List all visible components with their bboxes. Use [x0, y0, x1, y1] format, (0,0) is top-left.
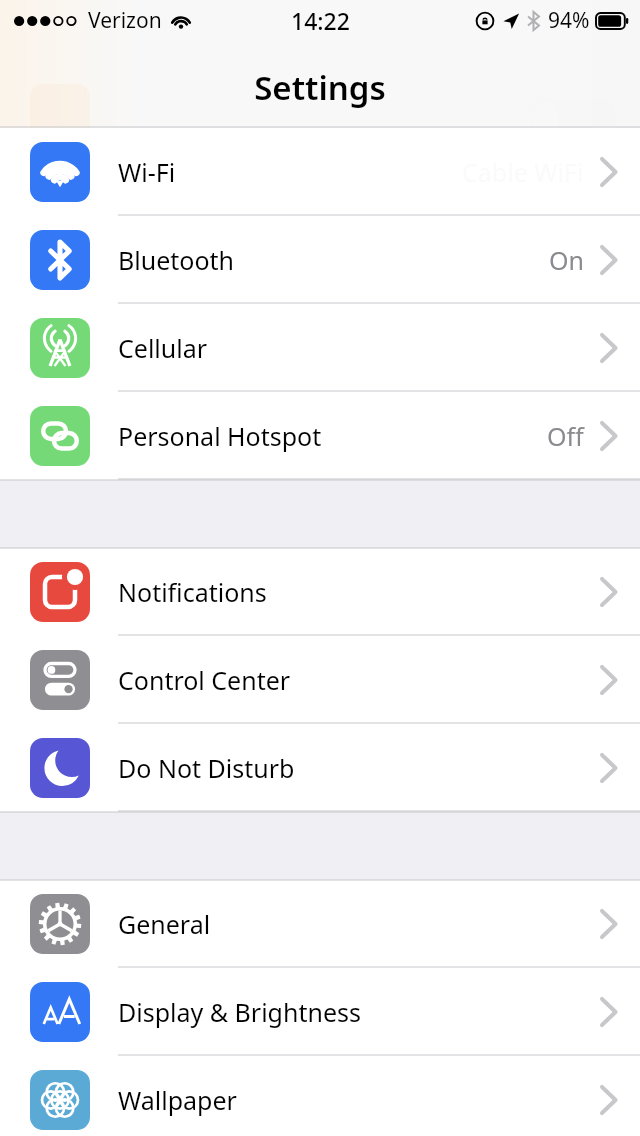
button[interactable]: General	[0, 880, 640, 968]
button[interactable]: Personal Hotspot	[0, 392, 640, 480]
staticText: Do Not Disturb	[118, 751, 295, 785]
button[interactable]: Bluetooth	[0, 216, 640, 304]
staticText: Notifications	[118, 575, 267, 609]
staticText: General	[118, 907, 211, 941]
staticText: Off	[547, 419, 584, 453]
staticText: Display & Brightness	[118, 995, 361, 1029]
button[interactable]: Wallpaper	[0, 1056, 640, 1136]
staticText: Personal Hotspot	[118, 419, 322, 453]
staticText: Settings	[254, 65, 386, 110]
button[interactable]: Control Center	[0, 636, 640, 724]
staticText: On	[549, 243, 584, 277]
staticText: Bluetooth	[118, 243, 235, 277]
staticText: Cellular	[118, 331, 208, 365]
button[interactable]: Notifications	[0, 548, 640, 636]
staticText: Verizon	[88, 6, 162, 35]
staticText: 94%	[548, 6, 590, 35]
button[interactable]: Do Not Disturb	[0, 724, 640, 812]
staticText: Wallpaper	[118, 1083, 237, 1117]
button[interactable]: Wi-Fi	[0, 128, 640, 216]
staticText: Wi-Fi	[118, 155, 176, 189]
button[interactable]: Display & Brightness	[0, 968, 640, 1056]
staticText: 14:22	[291, 5, 350, 36]
button[interactable]: Cellular	[0, 304, 640, 392]
staticText: Control Center	[118, 663, 291, 697]
